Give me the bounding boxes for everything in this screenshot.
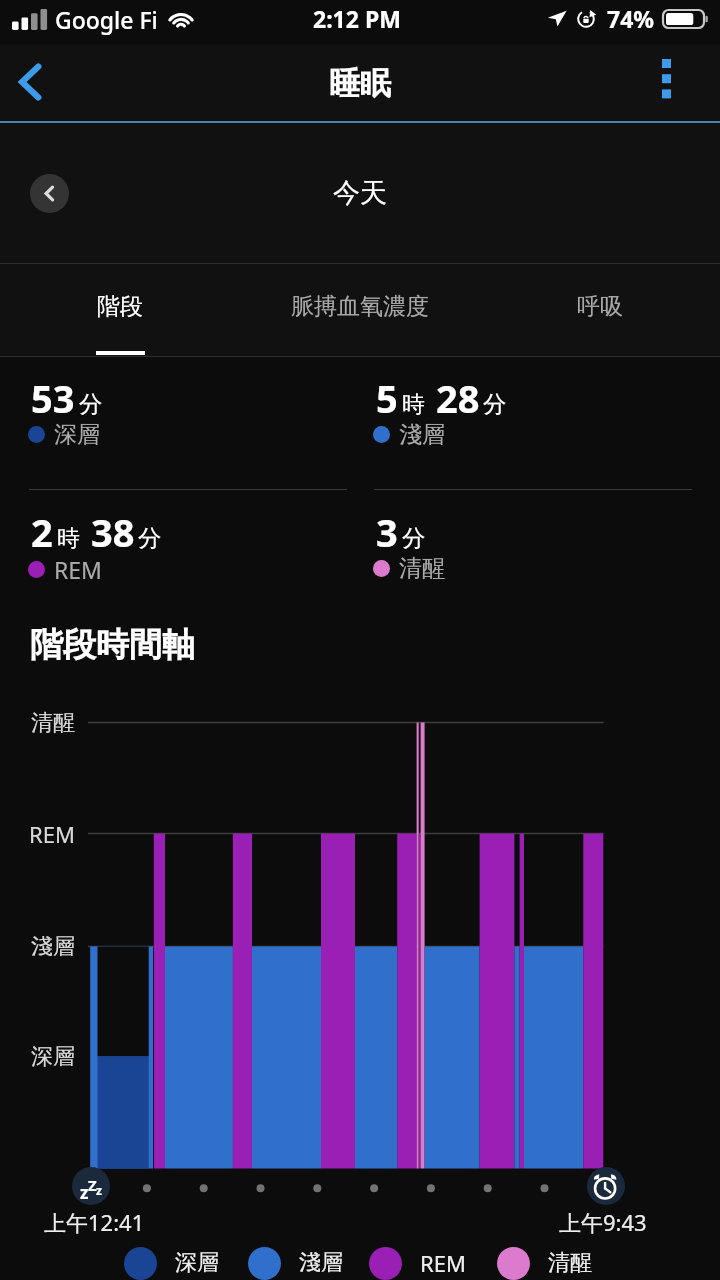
staticText: 今天 xyxy=(333,176,387,210)
staticText: 睡眠 xyxy=(329,64,391,103)
button[interactable]: More options xyxy=(648,45,720,123)
staticText: 階段時間軸 xyxy=(30,624,195,666)
button[interactable]: 清醒 xyxy=(497,1243,592,1280)
staticText: 深層 xyxy=(31,1043,75,1071)
button[interactable]: 呼吸 xyxy=(480,263,720,357)
staticText: 清醒 xyxy=(31,709,75,737)
staticText: 清醒 xyxy=(399,554,445,583)
staticText: 淺層 xyxy=(31,933,75,961)
staticText: 分 xyxy=(138,524,161,553)
button[interactable]: 脈搏血氧濃度 xyxy=(240,263,480,357)
staticText: 深層 xyxy=(175,1249,219,1277)
staticText: 階段 xyxy=(97,292,143,321)
button[interactable]: 深層 xyxy=(124,1243,219,1280)
button[interactable]: 2 xyxy=(28,491,358,599)
staticText: 53 xyxy=(31,372,75,424)
button[interactable]: Sleep start xyxy=(72,1167,110,1205)
staticText: 28 xyxy=(436,372,480,424)
staticText: 脈搏血氧濃度 xyxy=(291,292,429,321)
staticText: 3 xyxy=(376,506,398,558)
button[interactable]: Previous day xyxy=(30,174,69,213)
staticText: 呼吸 xyxy=(577,292,623,321)
staticText: 上午9:43 xyxy=(559,1207,647,1237)
button[interactable]: REM xyxy=(369,1243,466,1280)
staticText: 時 xyxy=(402,390,425,419)
staticText: 分 xyxy=(402,524,425,553)
staticText: REM xyxy=(54,554,102,585)
staticText: 清醒 xyxy=(548,1249,592,1277)
button[interactable]: Back xyxy=(0,45,74,123)
staticText: z xyxy=(96,1182,102,1198)
staticText: 淺層 xyxy=(399,420,445,449)
staticText: REM xyxy=(420,1248,466,1278)
staticText: z xyxy=(80,1181,89,1204)
button[interactable]: 5 xyxy=(373,357,703,465)
button[interactable]: 階段 xyxy=(0,263,240,357)
button[interactable]: 53 xyxy=(28,357,358,465)
button[interactable]: 淺層 xyxy=(248,1243,343,1280)
staticText: 深層 xyxy=(54,420,100,449)
staticText: 時 xyxy=(57,524,80,553)
staticText: Z xyxy=(88,1175,97,1195)
staticText: 5 xyxy=(376,372,398,424)
staticText: 2 xyxy=(31,506,53,558)
staticText: 2:12 PM xyxy=(313,3,401,34)
staticText: 38 xyxy=(91,506,135,558)
button[interactable]: Wake alarm xyxy=(587,1167,625,1205)
staticText: REM xyxy=(29,819,75,849)
staticText: 74% xyxy=(607,3,655,34)
staticText: 分 xyxy=(79,390,102,419)
staticText: 淺層 xyxy=(299,1249,343,1277)
staticText: 上午12:41 xyxy=(44,1207,145,1237)
staticText: Google Fi xyxy=(55,4,158,35)
staticText: 分 xyxy=(483,390,506,419)
button[interactable]: 3 xyxy=(373,491,703,599)
